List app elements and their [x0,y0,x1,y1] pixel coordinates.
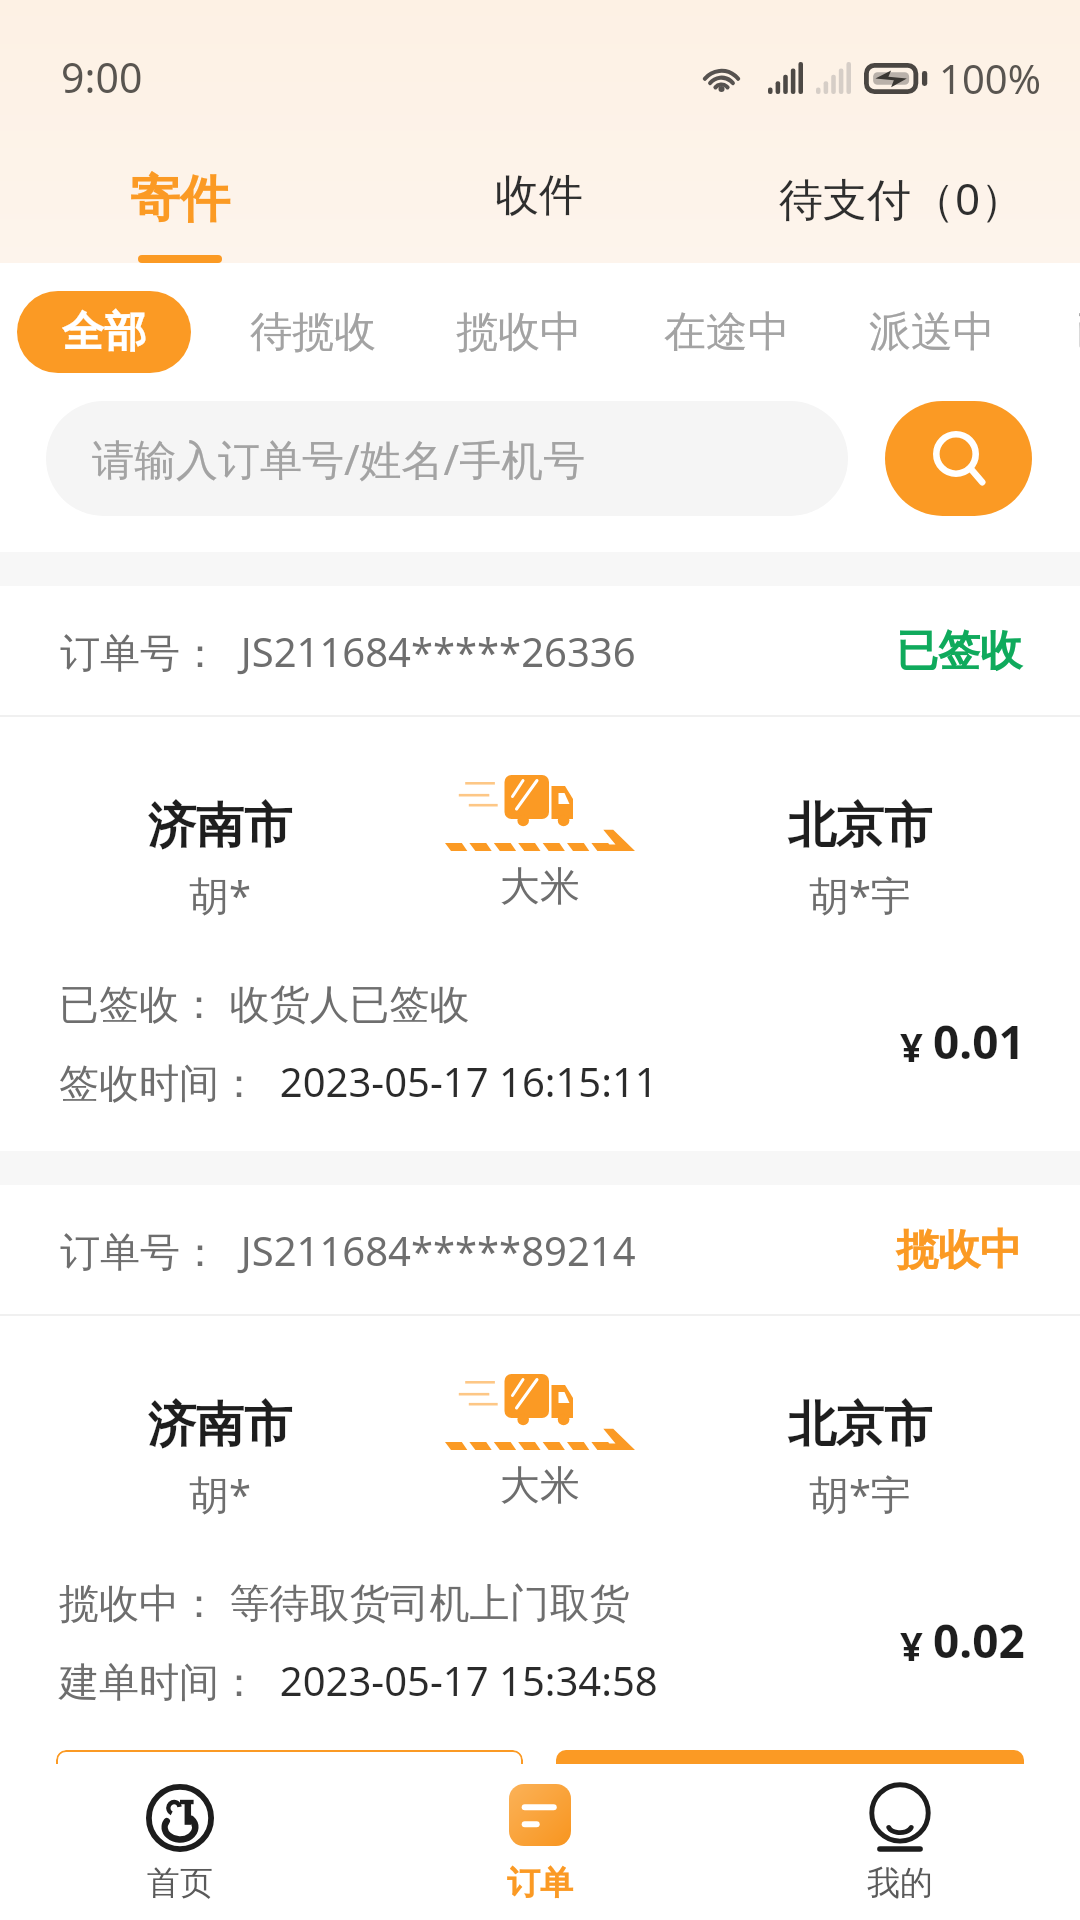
staticText: 联系司机 [710,1776,870,1826]
staticText: 揽收中 [896,1224,1022,1277]
button[interactable]: 请输入订单号/姓名/手机号 [46,401,848,516]
button[interactable]: 取消订单 [56,1750,523,1852]
button[interactable]: 收件 [399,152,679,263]
button[interactable]: 全部 [17,291,191,373]
button[interactable]: 搜索 Search [885,401,1032,516]
button[interactable]: 揽收中 [429,291,609,373]
staticText: 9:00 [61,49,143,105]
staticText: 全部 [62,306,146,359]
other: 首页 Home [146,1784,214,1852]
staticText: 北京市 [788,796,932,856]
staticText: 胡* [189,867,252,922]
staticText: 订单号： JS211684*****89214 [60,1223,636,1278]
staticText: 请输入订单号/姓名/手机号 [92,430,586,487]
button[interactable]: 首页 Home [0,1764,360,1920]
button[interactable]: 联系司机 [556,1750,1024,1852]
staticText: 0.02 [933,1609,1025,1672]
staticText: 我的 [867,1862,933,1904]
staticText: 胡* [189,1466,252,1521]
staticText: 100% [939,51,1041,105]
staticText: 收件 [495,168,583,223]
staticText: 0.01 [933,1010,1025,1073]
staticText: 揽收中 [456,306,582,359]
staticText: 胡*宇 [809,1466,912,1521]
button[interactable]: 订单号： JS211684*****89214 [0,1185,1080,1896]
other: 订单 Orders [509,1784,571,1846]
button[interactable]: 我的 Profile [720,1764,1080,1920]
staticText: 胡*宇 [809,867,912,922]
staticText: 建单时间： 2023-05-17 15:34:58 [59,1653,658,1708]
staticText: 订单 [507,1862,573,1904]
staticText: 订单号： JS211684*****26336 [60,624,636,679]
button[interactable]: 寄件 [40,152,320,263]
staticText: 北京市 [788,1395,932,1455]
other: 我的 Profile [866,1784,934,1852]
button[interactable]: 订单 Orders [360,1764,720,1920]
staticText: 待揽收 [250,306,376,359]
staticText: 寄件 [130,168,230,231]
staticText: 首页 [147,1862,213,1904]
staticText: 济南市 [148,1395,292,1455]
button[interactable]: 订单号： JS211684*****26336 [0,586,1080,1151]
staticText: 派送中 [869,306,995,359]
button[interactable]: 已签收 [1048,291,1080,373]
staticText: 在途中 [664,306,790,359]
staticText: 已签收 [1075,306,1080,359]
staticText: 待支付（0） [779,168,1025,228]
staticText: ¥ [900,1618,923,1672]
staticText: 揽收中： 等待取货司机上门取货 [59,1574,630,1629]
staticText: 大米 [500,861,580,911]
button[interactable]: 待揽收 [223,291,403,373]
staticText: 大米 [500,1460,580,1510]
staticText: ¥ [900,1019,923,1073]
staticText: 济南市 [148,796,292,856]
button[interactable]: 待支付（0） [762,152,1042,263]
staticText: 签收时间： 2023-05-17 16:15:11 [59,1054,658,1109]
button[interactable]: 在途中 [637,291,817,373]
staticText: 取消订单 [210,1776,370,1826]
staticText: 已签收： 收货人已签收 [59,975,470,1030]
button[interactable]: 派送中 [842,291,1022,373]
staticText: 已签收 [896,625,1022,678]
